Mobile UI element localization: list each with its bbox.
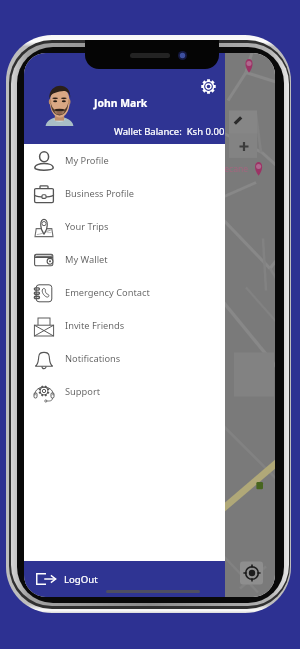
button[interactable]: Your Trips: [24, 210, 225, 243]
staticText: Tecane: [220, 163, 249, 175]
button[interactable]: LogOut: [24, 561, 225, 597]
other: Profile photo: [45, 81, 74, 126]
staticText: LogOut: [64, 573, 98, 586]
staticText: Emergency Contact: [65, 286, 150, 299]
staticText: Invite Friends: [65, 319, 125, 332]
button[interactable]: Emergency Contact: [24, 276, 225, 309]
staticText: John Mark: [94, 96, 148, 110]
staticText: My Profile: [65, 154, 109, 167]
button[interactable]: Business Profile: [24, 177, 225, 210]
staticText: Business Profile: [65, 187, 135, 200]
button[interactable]: My Wallet: [24, 243, 225, 276]
button[interactable]: My Profile: [24, 144, 225, 177]
button[interactable]: Invite Friends: [24, 309, 225, 342]
staticText: Support: [65, 385, 101, 398]
staticText: Notifications: [65, 352, 121, 365]
staticText: Wallet Balance: Ksh 0.00: [114, 125, 225, 138]
button[interactable]: Notifications: [24, 342, 225, 375]
button[interactable]: Support: [24, 375, 225, 408]
staticText: My Wallet: [65, 253, 108, 266]
staticText: Your Trips: [65, 220, 109, 233]
button[interactable]: Settings: [200, 78, 217, 95]
